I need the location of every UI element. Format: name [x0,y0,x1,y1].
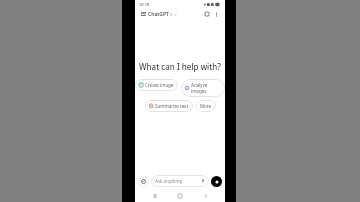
staticText: Summarize text [155,103,189,109]
staticText: ChatGPT [148,11,169,18]
button[interactable]: New chat [202,9,212,19]
button[interactable]: ChatGPT [148,11,177,18]
button[interactable]: More options [212,10,221,19]
button[interactable]: More [196,100,216,112]
button[interactable]: Recents [149,190,161,202]
staticText: Ask anything [155,178,183,184]
staticText: Create image [145,82,174,88]
staticText: More [200,103,212,109]
staticText: What can I help with? [139,61,221,72]
staticText: 5 [170,12,173,17]
staticText: 10:18 [139,2,150,7]
button[interactable]: Menu [139,10,147,18]
button[interactable]: Voice mode [211,176,222,187]
button[interactable]: Back [200,190,212,202]
button[interactable]: Attach [138,176,149,187]
button[interactable]: Create image [135,79,178,91]
button[interactable]: Summarize text [145,100,193,112]
staticText: Analyze images [191,82,221,94]
button[interactable]: Ask anything [151,175,209,187]
button[interactable]: Home [174,190,186,202]
button[interactable]: Analyze images [181,79,225,97]
